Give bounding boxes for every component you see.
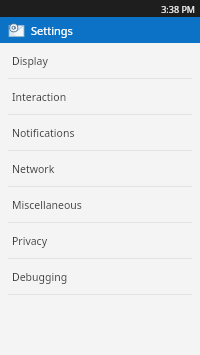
button[interactable]: Notifications	[0, 115, 200, 150]
button[interactable]: Privacy	[0, 223, 200, 258]
button[interactable]: Miscellaneous	[0, 187, 200, 222]
button[interactable]: App icon	[0, 17, 200, 43]
staticText: Debugging	[12, 270, 68, 284]
button[interactable]: Interaction	[0, 79, 200, 114]
button[interactable]: Debugging	[0, 259, 200, 294]
button[interactable]: Display	[0, 43, 200, 78]
staticText: 3:38 PM	[161, 3, 195, 15]
staticText: Interaction	[12, 90, 67, 104]
staticText: Settings	[31, 23, 73, 38]
other: App icon	[8, 22, 25, 39]
staticText: Notifications	[12, 126, 75, 140]
staticText: Network	[12, 162, 55, 176]
staticText: Display	[12, 54, 48, 68]
button[interactable]: Network	[0, 151, 200, 186]
staticText: Miscellaneous	[12, 198, 82, 212]
staticText: Privacy	[12, 234, 48, 248]
